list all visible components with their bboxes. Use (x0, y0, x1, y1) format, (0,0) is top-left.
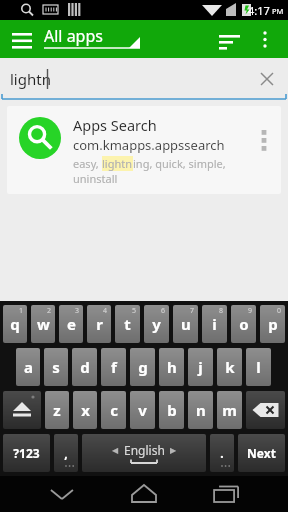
button[interactable]: More options (250, 24, 280, 54)
staticText: i (212, 314, 217, 334)
staticText: 4:17 (248, 3, 270, 18)
button[interactable]: v (130, 391, 155, 429)
button[interactable]: Apps Search (7, 106, 281, 194)
staticText: lightn (10, 69, 51, 89)
button[interactable]: l (246, 348, 271, 386)
button[interactable]: Sort (214, 23, 246, 55)
staticText: 0 (277, 306, 282, 316)
staticText: ▶ (170, 446, 177, 455)
staticText: ◀ (112, 446, 119, 455)
staticText: ing, quick, simple, (133, 156, 226, 171)
button[interactable]: j (188, 348, 213, 386)
button[interactable]: Open navigation menu (6, 23, 38, 55)
button[interactable]: Next (238, 434, 285, 472)
staticText: 7 (190, 306, 195, 316)
button[interactable]: 0 (260, 305, 285, 343)
button[interactable]: . (210, 434, 234, 472)
staticText: PM (272, 6, 284, 16)
button[interactable]: Delete (246, 391, 285, 429)
button[interactable]: 5 (115, 305, 140, 343)
button[interactable]: 8 (202, 305, 227, 343)
button[interactable]: x (73, 391, 97, 429)
staticText: k (225, 357, 235, 377)
staticText: uninstall (73, 171, 118, 186)
button[interactable]: 6 (144, 305, 169, 343)
staticText: l (256, 357, 261, 377)
staticText: m (222, 400, 237, 420)
staticText: 1 (19, 306, 24, 316)
button[interactable]: 3 (59, 305, 83, 343)
staticText: . (220, 445, 224, 461)
staticText: 4 (103, 306, 108, 316)
button[interactable]: 9 (231, 305, 256, 343)
staticText: 2 (47, 306, 52, 316)
button[interactable]: Home (97, 476, 192, 512)
staticText: u (181, 314, 191, 334)
staticText: t (124, 314, 131, 334)
staticText: z (53, 400, 61, 420)
staticText: 5 (132, 306, 137, 316)
button[interactable]: 2 (31, 305, 55, 343)
staticText: e (67, 314, 76, 334)
button[interactable]: h (159, 348, 184, 386)
button[interactable]: k (217, 348, 242, 386)
staticText: com.kmapps.appssearch (73, 136, 225, 154)
staticText: q (10, 314, 20, 334)
staticText: 3 (75, 306, 80, 316)
button[interactable]: d (72, 348, 97, 386)
staticText: All apps (44, 25, 103, 47)
staticText: y (152, 314, 161, 334)
staticText: h (167, 357, 177, 377)
staticText: f (111, 357, 117, 377)
button[interactable]: Shift (3, 391, 41, 429)
staticText: , (64, 445, 68, 461)
staticText: d (80, 357, 90, 377)
staticText: w (37, 314, 50, 334)
button[interactable]: Hide keyboard (0, 476, 95, 512)
button[interactable]: , (54, 434, 78, 472)
button[interactable]: Recent apps (193, 476, 288, 512)
staticText: n (196, 400, 206, 420)
staticText: g (138, 357, 148, 377)
staticText: x (81, 400, 90, 420)
staticText: 8 (219, 306, 224, 316)
staticText: o (239, 314, 249, 334)
button[interactable]: 1 (3, 305, 27, 343)
staticText: English (124, 442, 165, 458)
staticText: 6 (161, 306, 166, 316)
staticText: r (96, 314, 103, 334)
button[interactable]: Item options (251, 114, 277, 168)
button[interactable]: Space, English (82, 434, 206, 472)
staticText: ?123 (13, 445, 40, 461)
staticText: 9 (248, 306, 253, 316)
button[interactable]: s (44, 348, 68, 386)
button[interactable]: g (130, 348, 155, 386)
staticText: p (268, 314, 278, 334)
button[interactable]: Clear search (252, 64, 282, 94)
button[interactable]: b (159, 391, 184, 429)
staticText: v (138, 400, 147, 420)
staticText: lightn (102, 156, 133, 171)
button[interactable]: c (101, 391, 126, 429)
staticText: a (24, 357, 33, 377)
button[interactable]: a (16, 348, 40, 386)
staticText: c (110, 400, 118, 420)
button[interactable]: f (101, 348, 126, 386)
staticText: j (198, 357, 203, 377)
staticText: b (167, 400, 177, 420)
staticText: easy, (73, 156, 102, 171)
button[interactable]: 7 (173, 305, 198, 343)
button[interactable]: z (45, 391, 69, 429)
button[interactable]: ?123 (3, 434, 50, 472)
button[interactable]: m (217, 391, 242, 429)
staticText: Apps Search (73, 115, 157, 135)
button[interactable]: 4 (87, 305, 111, 343)
staticText: Next (247, 445, 276, 461)
staticText: s (52, 357, 60, 377)
button[interactable]: n (188, 391, 213, 429)
